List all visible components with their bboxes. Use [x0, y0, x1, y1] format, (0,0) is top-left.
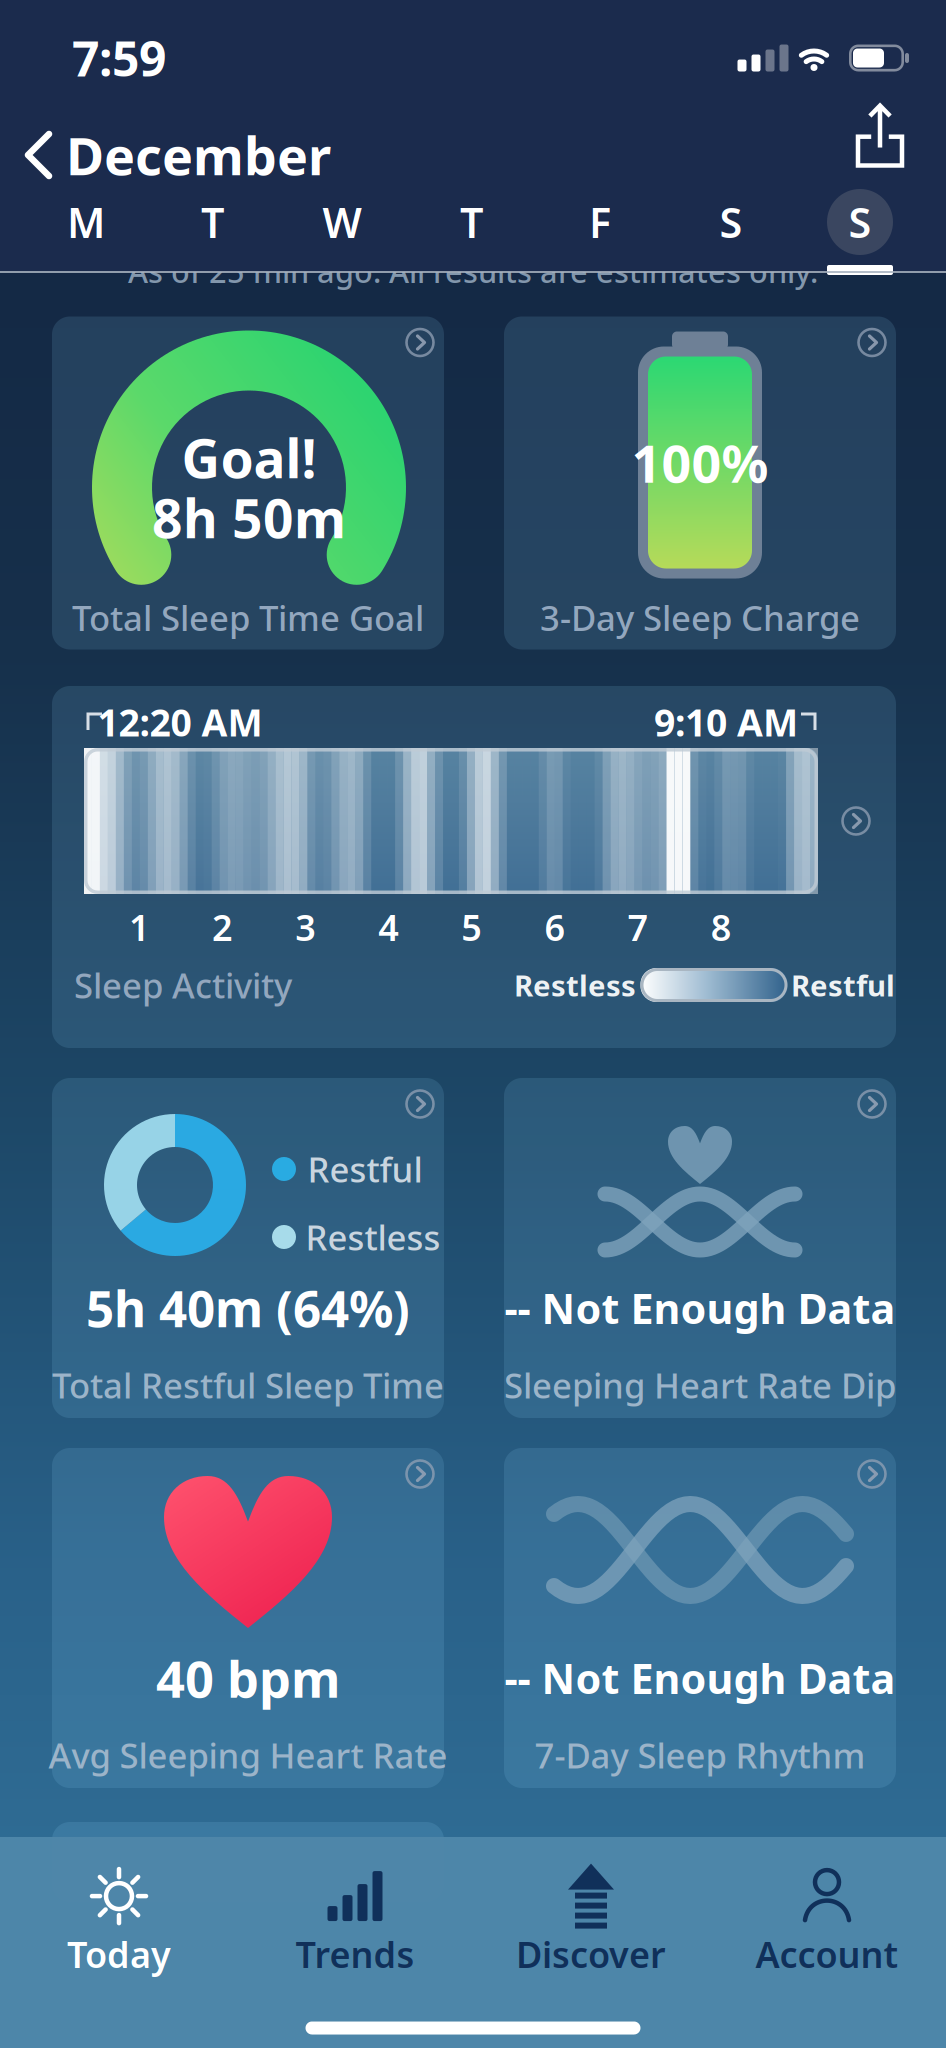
button[interactable]: M	[53, 189, 119, 255]
staticText: Discover	[516, 1930, 666, 1978]
button[interactable]: S	[698, 189, 764, 255]
staticText: 7-Day Sleep Rhythm	[534, 1732, 865, 1778]
staticText: Total Restful Sleep Time	[52, 1362, 444, 1408]
staticText: 7	[627, 903, 648, 951]
staticText: Avg Sleeping Heart Rate	[48, 1732, 447, 1778]
staticText: 5h 40m (64%)	[86, 1275, 410, 1341]
staticText: W	[322, 195, 361, 249]
staticText: 3-Day Sleep Charge	[540, 594, 860, 640]
staticText: As of 25 min ago. All results are estima…	[128, 251, 818, 291]
staticText: Sleep Activity	[74, 962, 292, 1008]
button[interactable]: 100%	[504, 316, 896, 649]
staticText: M	[67, 195, 105, 249]
button[interactable]: 40 bpm	[52, 1448, 444, 1788]
button[interactable]: T	[180, 189, 246, 255]
button[interactable]: -- Not Enough Data	[504, 1448, 896, 1788]
staticText: 5	[461, 903, 482, 951]
button[interactable]: More sleep data	[52, 1822, 444, 1902]
button[interactable]: Goal!	[52, 316, 444, 649]
staticText: December	[66, 120, 331, 190]
staticText: Sleeping Heart Rate Dip	[504, 1362, 896, 1408]
button[interactable]: 12:20 AM	[52, 686, 896, 1048]
staticText: 40 bpm	[156, 1644, 340, 1712]
staticText: -- Not Enough Data	[504, 1281, 895, 1335]
button[interactable]: Account	[709, 1863, 945, 1983]
staticText: Restless	[305, 1214, 440, 1260]
staticText: Restful	[307, 1146, 422, 1192]
staticText: 12:20 AM	[97, 697, 262, 747]
button[interactable]: F	[567, 189, 633, 255]
staticText: Goal!	[181, 422, 316, 493]
staticText: S	[848, 195, 871, 249]
staticText: Today	[67, 1930, 171, 1978]
staticText: Restless	[514, 965, 636, 1004]
staticText: Total Sleep Time Goal	[72, 594, 424, 640]
staticText: 9:10 AM	[654, 697, 798, 747]
staticText: 6	[544, 903, 565, 951]
staticText: F	[589, 195, 611, 249]
staticText: 4	[378, 903, 399, 951]
staticText: 3	[295, 903, 316, 951]
button[interactable]: W	[309, 189, 375, 255]
button[interactable]: -- Not Enough Data	[504, 1078, 896, 1418]
button[interactable]: Today	[1, 1863, 237, 1983]
button[interactable]: S	[827, 189, 893, 255]
staticText: Restful	[791, 965, 895, 1004]
staticText: 8h 50m	[152, 482, 346, 553]
button[interactable]: Discover	[473, 1863, 709, 1983]
button[interactable]: December	[28, 125, 448, 185]
staticText: S	[719, 195, 742, 249]
staticText: Account	[755, 1930, 898, 1978]
staticText: 7:59	[72, 26, 166, 90]
staticText: -- Not Enough Data	[504, 1651, 895, 1705]
staticText: 8	[711, 903, 732, 951]
button[interactable]: Restful	[52, 1078, 444, 1418]
staticText: 1	[129, 903, 150, 951]
staticText: 2	[212, 903, 233, 951]
staticText: T	[460, 195, 484, 249]
staticText: 100%	[631, 428, 768, 497]
staticText: T	[201, 195, 225, 249]
button[interactable]: T	[439, 189, 505, 255]
button[interactable]: Share	[848, 110, 912, 175]
button[interactable]: Trends	[237, 1863, 473, 1983]
staticText: Trends	[295, 1930, 414, 1978]
